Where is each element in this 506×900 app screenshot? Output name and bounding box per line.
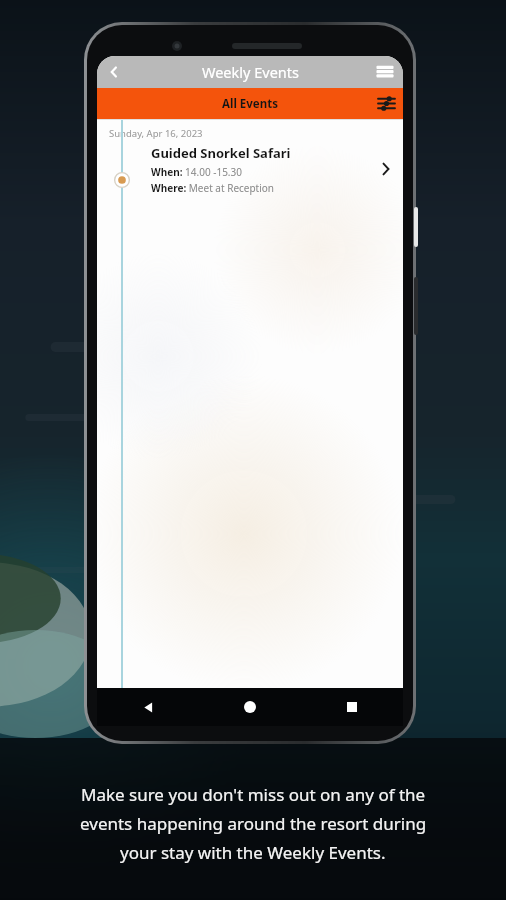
button[interactable]: All Events	[97, 88, 403, 119]
staticText: Weekly Events	[202, 62, 299, 82]
button[interactable]: Menu	[367, 56, 403, 88]
button[interactable]: Back	[97, 56, 131, 88]
button[interactable]: Home	[235, 692, 265, 722]
button[interactable]: Filter	[369, 88, 403, 119]
button[interactable]: Guided Snorkel Safari	[97, 140, 403, 198]
staticText: Sunday, Apr 16, 2023	[109, 127, 203, 140]
button[interactable]: Open event	[369, 152, 403, 186]
staticText: Where: Meet at Reception	[151, 181, 275, 195]
staticText: Make sure you don't miss out on any of t…	[81, 783, 426, 806]
button[interactable]: Back	[133, 692, 163, 722]
button[interactable]: Recent apps	[337, 692, 367, 722]
staticText: your stay with the Weekly Events.	[120, 841, 386, 864]
staticText: Guided Snorkel Safari	[151, 144, 291, 162]
staticText: When: 14.00 -15.30	[151, 165, 242, 179]
staticText: All Events	[222, 96, 278, 112]
staticText: events happening around the resort durin…	[80, 812, 427, 835]
